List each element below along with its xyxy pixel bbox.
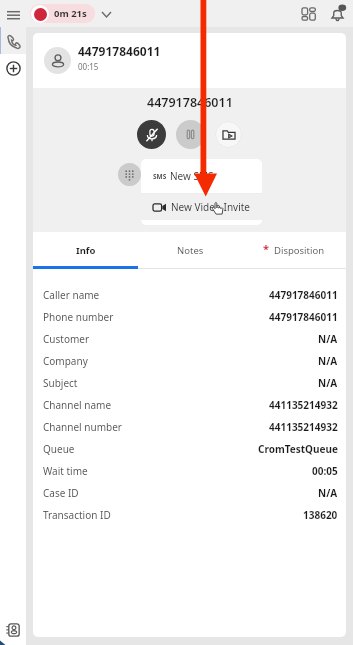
staticText: Channel name xyxy=(43,398,112,412)
button[interactable]: SMS xyxy=(141,159,262,193)
staticText: SMS xyxy=(153,172,167,181)
staticText: 447917846011 xyxy=(78,43,161,59)
button[interactable]: Menu xyxy=(3,3,24,25)
button[interactable]: Calls xyxy=(0,27,26,54)
staticText: 447917846011 xyxy=(269,310,338,324)
staticText: 447917846011 xyxy=(147,94,233,111)
staticText: 441135214932 xyxy=(269,398,338,412)
button[interactable]: New Video Invite xyxy=(141,194,262,220)
button[interactable]: Expand call xyxy=(98,6,114,22)
staticText: CromTestQueue xyxy=(258,442,338,456)
staticText: 00:05 xyxy=(312,464,338,478)
staticText: Notes xyxy=(177,244,204,257)
staticText: N/A xyxy=(318,376,338,390)
button[interactable]: Add xyxy=(0,54,26,82)
staticText: 447917846011 xyxy=(269,288,338,302)
staticText: * xyxy=(263,241,269,256)
staticText: Disposition xyxy=(274,244,325,257)
button[interactable]: Hold xyxy=(176,120,205,149)
staticText: Info xyxy=(76,244,96,257)
button[interactable]: 447917846011 xyxy=(44,33,346,88)
staticText: 138620 xyxy=(303,508,338,522)
button[interactable]: Mute xyxy=(137,120,166,149)
staticText: Transaction ID xyxy=(43,508,111,522)
staticText: New SMS xyxy=(170,169,214,183)
button[interactable]: Dialpad xyxy=(118,163,141,186)
button[interactable]: Apps xyxy=(298,3,320,25)
staticText: Subject xyxy=(43,376,78,390)
staticText: Phone number xyxy=(43,310,114,324)
staticText: Channel number xyxy=(43,420,122,434)
staticText: Case ID xyxy=(43,486,79,500)
button[interactable]: Info xyxy=(33,232,138,269)
staticText: N/A xyxy=(318,486,338,500)
staticText: N/A xyxy=(318,354,338,368)
staticText: New Video Invite xyxy=(171,200,250,214)
button[interactable]: * xyxy=(242,232,346,269)
button[interactable]: Contacts xyxy=(0,615,26,645)
staticText: 441135214932 xyxy=(269,420,338,434)
button[interactable]: Recordings xyxy=(215,121,242,148)
staticText: Company xyxy=(43,354,88,368)
button[interactable]: Notifications xyxy=(326,3,348,25)
button[interactable]: 0m 21s xyxy=(30,4,95,23)
staticText: Caller name xyxy=(43,288,100,302)
button[interactable]: Notes xyxy=(138,232,242,269)
staticText: N/A xyxy=(318,332,338,346)
staticText: Queue xyxy=(43,442,75,456)
staticText: 00:15 xyxy=(78,61,99,72)
staticText: Customer xyxy=(43,332,90,346)
staticText: 0m 21s xyxy=(54,7,87,20)
staticText: Wait time xyxy=(43,464,88,478)
